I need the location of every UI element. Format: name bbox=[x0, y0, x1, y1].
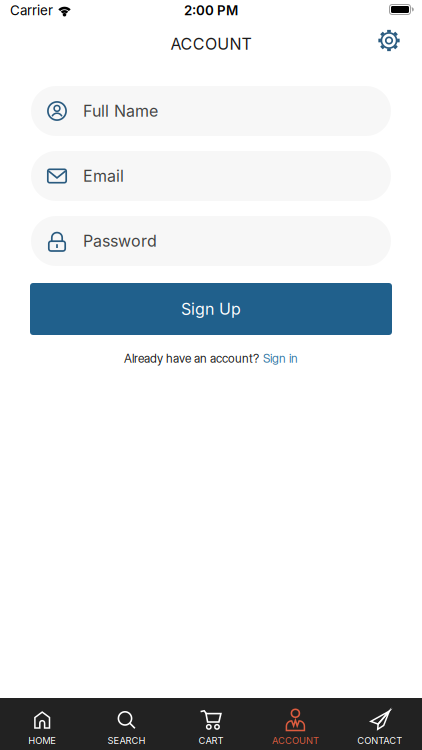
staticText: Full Name bbox=[83, 102, 158, 120]
staticText: Email bbox=[83, 167, 124, 185]
staticText: Carrier bbox=[10, 3, 53, 18]
staticText: Already have an account? bbox=[124, 351, 259, 365]
staticText: ACCOUNT bbox=[170, 35, 252, 53]
staticText: Sign in bbox=[263, 351, 298, 365]
button[interactable]: CONTACT bbox=[338, 709, 422, 746]
button[interactable]: Full Name bbox=[31, 86, 391, 136]
staticText: 2:00 PM bbox=[184, 3, 238, 18]
button[interactable] bbox=[378, 29, 400, 51]
staticText: Sign Up bbox=[181, 300, 241, 318]
button[interactable]: CART bbox=[169, 709, 253, 746]
button[interactable]: Password bbox=[31, 216, 391, 266]
button[interactable]: SEARCH bbox=[84, 709, 169, 746]
staticText: SEARCH bbox=[108, 735, 146, 746]
staticText: CART bbox=[198, 735, 223, 746]
button[interactable]: Sign in bbox=[263, 351, 298, 365]
button[interactable]: Email bbox=[31, 151, 391, 201]
button[interactable]: Sign Up bbox=[30, 283, 392, 335]
button[interactable]: HOME bbox=[0, 709, 84, 746]
staticText: CONTACT bbox=[357, 735, 402, 746]
staticText: Password bbox=[83, 232, 157, 250]
button[interactable]: ACCOUNT bbox=[253, 709, 338, 746]
staticText: ACCOUNT bbox=[272, 735, 319, 746]
staticText: HOME bbox=[28, 735, 56, 746]
